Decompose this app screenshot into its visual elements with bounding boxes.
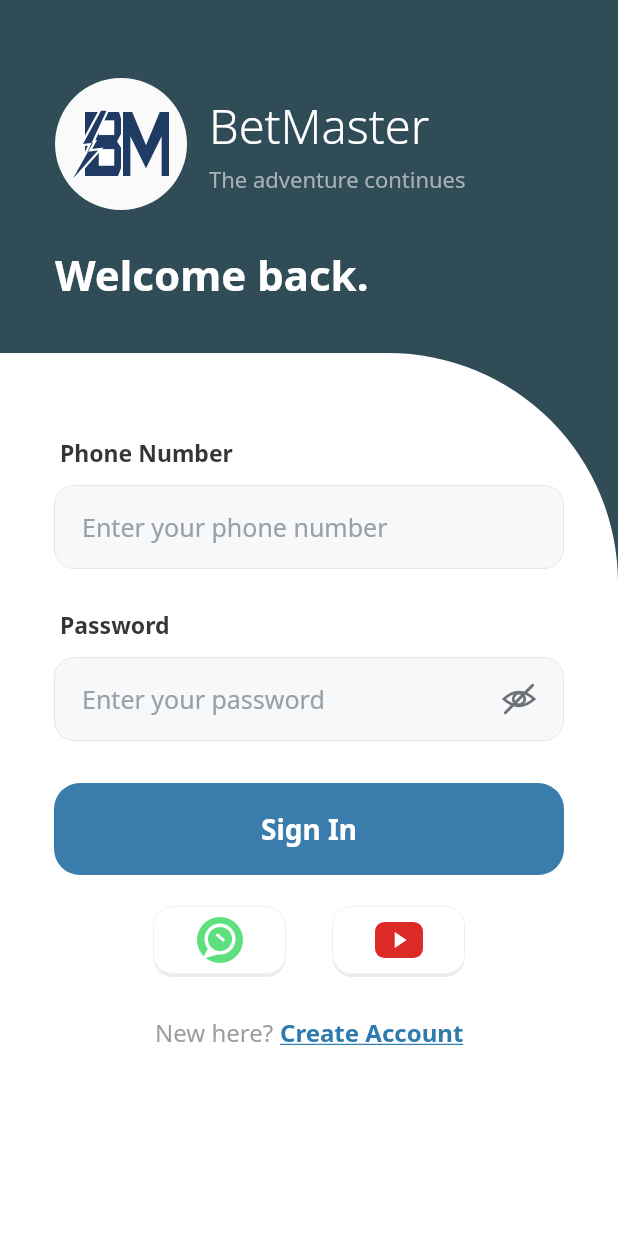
staticText: Enter your phone number (82, 510, 388, 544)
staticText: Sign In (261, 810, 358, 848)
staticText: Welcome back. (55, 246, 369, 303)
button[interactable]: Sign In (54, 783, 564, 875)
staticText: BetMaster (209, 94, 430, 158)
button[interactable]: WhatsApp (153, 906, 286, 974)
button[interactable]: Create Account (280, 1016, 464, 1049)
staticText: Password (60, 609, 170, 640)
staticText: New here? (155, 1016, 280, 1049)
button[interactable]: Show password (496, 676, 542, 722)
staticText: The adventure continues (209, 164, 466, 194)
staticText: Phone Number (60, 437, 233, 468)
button[interactable]: Enter your phone number (54, 485, 564, 569)
staticText: Enter your password (82, 682, 325, 716)
button[interactable]: Enter your password (54, 657, 564, 741)
staticText: Create Account (280, 1016, 464, 1049)
button[interactable]: YouTube (332, 906, 465, 974)
